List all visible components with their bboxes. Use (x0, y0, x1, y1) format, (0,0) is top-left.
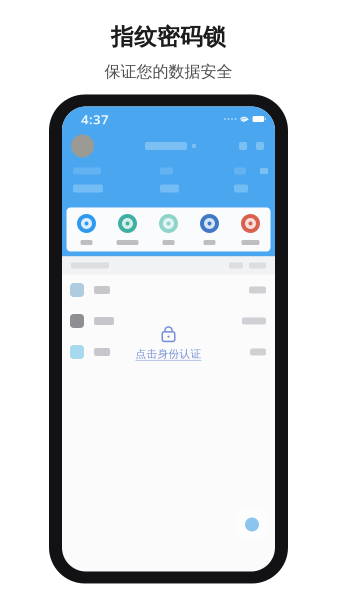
staticText: 指纹密码锁 (111, 23, 226, 51)
button[interactable] (71, 214, 101, 245)
button[interactable]: 新建 (235, 507, 269, 541)
button[interactable] (112, 214, 142, 245)
staticText: 4:37 (81, 110, 109, 128)
staticText: 保证您的数据安全 (104, 62, 232, 81)
button[interactable] (62, 336, 275, 367)
button[interactable] (62, 274, 275, 305)
button[interactable] (235, 214, 265, 245)
button[interactable] (153, 214, 183, 245)
button[interactable]: 点击身份认证 (128, 321, 208, 363)
button[interactable] (194, 214, 224, 245)
button[interactable]: 搜索 (256, 142, 264, 150)
button[interactable] (62, 305, 275, 336)
staticText: 点击身份认证 (135, 347, 201, 360)
button[interactable]: 扫一扫 (239, 142, 247, 150)
button[interactable]: 个人中心 (71, 134, 94, 157)
